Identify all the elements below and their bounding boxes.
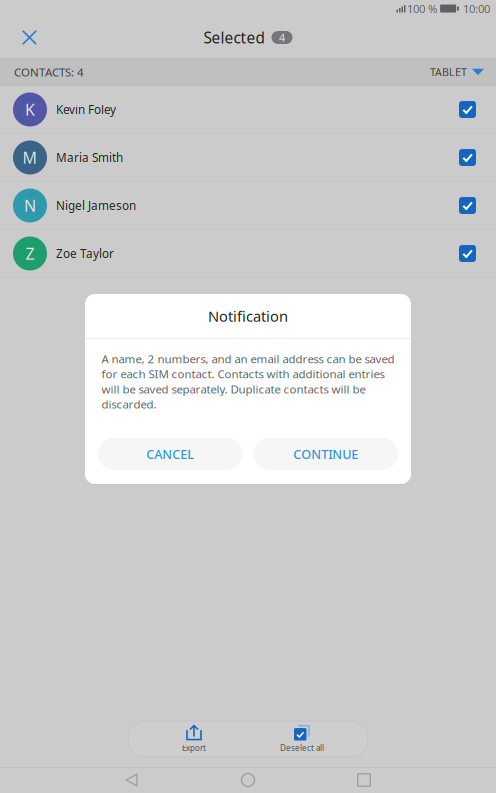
staticText: 4 — [279, 30, 285, 45]
button[interactable]: N — [0, 182, 496, 230]
staticText: TABLET — [430, 65, 467, 79]
button[interactable]: CANCEL — [98, 438, 242, 470]
button[interactable]: M — [0, 134, 496, 182]
button[interactable]: CONTINUE — [253, 438, 398, 470]
staticText: Maria Smith — [56, 149, 123, 165]
button[interactable]: Export — [158, 726, 230, 752]
button[interactable]: Deselect all — [266, 726, 338, 752]
staticText: K — [25, 99, 35, 120]
button[interactable]: Back — [80, 768, 184, 792]
button[interactable]: Recents — [312, 768, 416, 792]
staticText: Zoe Taylor — [56, 245, 114, 261]
button[interactable]: Home — [184, 768, 312, 792]
staticText: Selected — [203, 27, 264, 48]
staticText: M — [22, 147, 37, 168]
staticText: CONTACTS: 4 — [14, 64, 84, 80]
staticText: CONTINUE — [293, 445, 358, 463]
staticText: Deselect all — [280, 743, 324, 753]
staticText: Nigel Jameson — [56, 197, 136, 213]
staticText: 10:00 — [463, 1, 490, 16]
staticText: CANCEL — [146, 445, 194, 463]
button[interactable]: TABLET — [430, 65, 496, 79]
staticText: 100 % — [407, 1, 437, 16]
button[interactable]: Z — [0, 230, 496, 278]
button[interactable]: Close — [0, 17, 59, 57]
button[interactable]: K — [0, 86, 496, 134]
staticText: N — [24, 195, 36, 216]
staticText: Notification — [208, 306, 288, 326]
staticText: Kevin Foley — [56, 101, 116, 117]
staticText: Export — [182, 743, 206, 753]
staticText: Z — [25, 243, 34, 264]
staticText: A name, 2 numbers, and an email address … — [101, 351, 394, 412]
